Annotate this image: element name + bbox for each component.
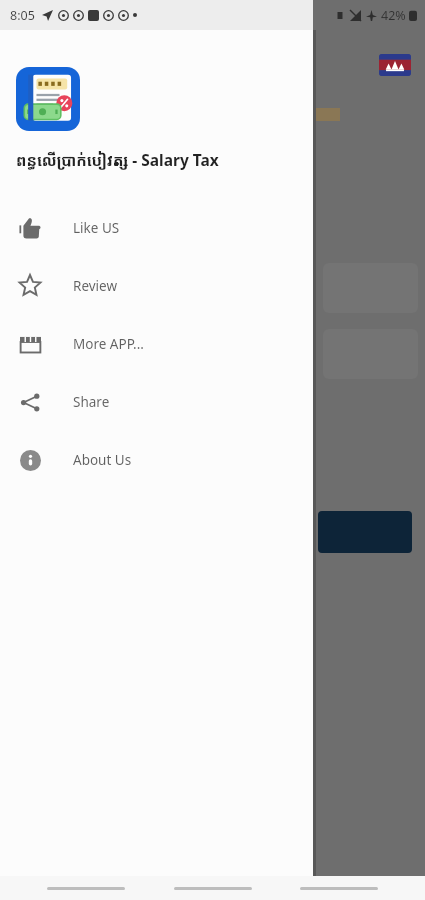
button[interactable]: Like US — [0, 199, 313, 257]
button[interactable]: Share — [0, 373, 313, 431]
staticText: ពន្ធលើប្រាក់បៀវត្ស - Salary Tax — [16, 149, 219, 170]
staticText: About Us — [73, 451, 132, 469]
button[interactable]: Language — [379, 54, 411, 76]
staticText: 8:05 — [10, 7, 35, 24]
button[interactable]: Review — [0, 257, 313, 315]
button[interactable]: About Us — [0, 431, 313, 489]
staticText: More APP... — [73, 335, 144, 353]
staticText: Like US — [73, 219, 120, 237]
button[interactable]: Navigation — [173, 879, 253, 897]
button[interactable]: Calculate — [318, 511, 412, 553]
staticText: Share — [73, 393, 110, 411]
button[interactable]: Navigation — [46, 879, 126, 897]
button[interactable]: More APP... — [0, 315, 313, 373]
staticText: Review — [73, 277, 118, 295]
button[interactable]: Navigation — [299, 879, 379, 897]
staticText: 42% — [381, 7, 406, 24]
